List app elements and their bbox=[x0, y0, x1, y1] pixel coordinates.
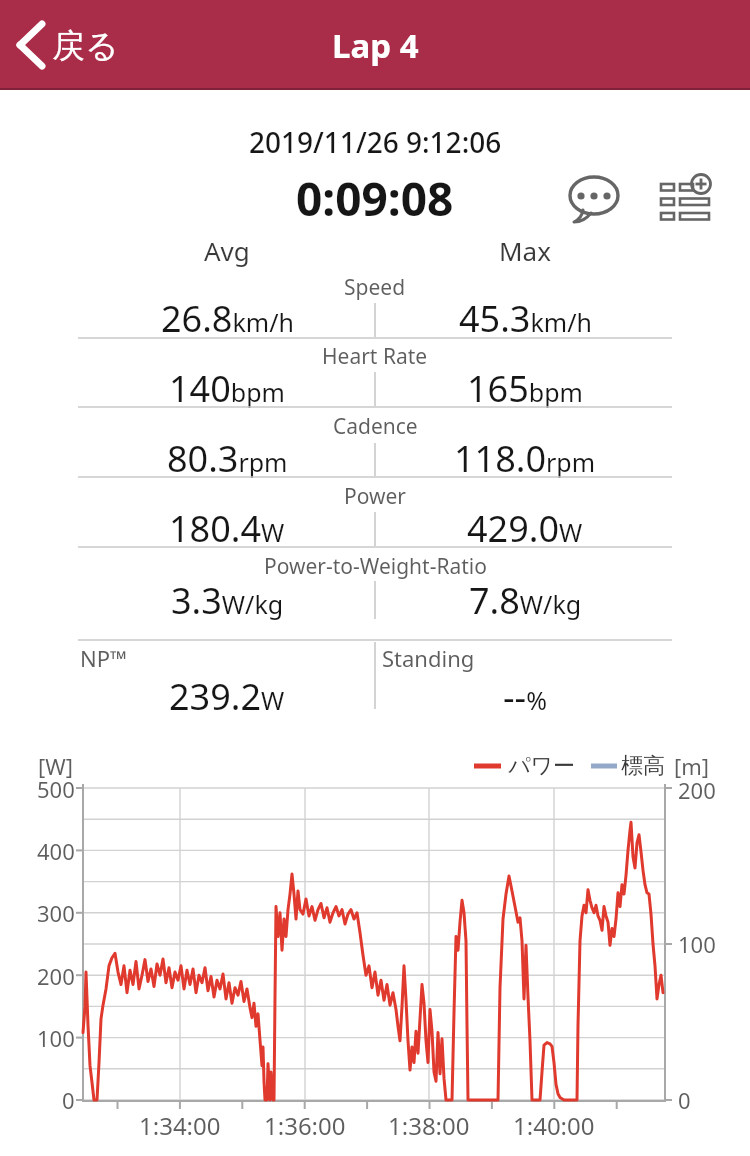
staticText: Power bbox=[344, 482, 407, 511]
staticText: 200 bbox=[37, 961, 75, 991]
staticText: Standing bbox=[382, 643, 475, 673]
button[interactable] bbox=[8, 8, 138, 82]
staticText: --% bbox=[503, 672, 547, 721]
staticText: 0 bbox=[678, 1085, 691, 1115]
staticText: 180.4W bbox=[169, 504, 285, 553]
staticText: 0 bbox=[62, 1085, 75, 1115]
staticText: Power-to-Weight-Ratio bbox=[264, 552, 487, 581]
staticText: 429.0W bbox=[467, 504, 583, 553]
staticText: Max bbox=[499, 233, 551, 268]
staticText: 45.3km/h bbox=[459, 294, 592, 343]
staticText: Cadence bbox=[333, 412, 418, 441]
staticText: 140bpm bbox=[169, 364, 285, 413]
staticText: 1:34:00 bbox=[139, 1109, 221, 1142]
staticText: Speed bbox=[344, 273, 406, 302]
staticText: 2019/11/26 9:12:06 bbox=[249, 123, 502, 161]
staticText: NP™ bbox=[80, 643, 128, 673]
staticText: 80.3rpm bbox=[167, 434, 288, 483]
staticText: 3.3W/kg bbox=[171, 576, 284, 625]
staticText: [m] bbox=[674, 751, 710, 781]
staticText: 100 bbox=[37, 1023, 75, 1053]
staticText: 標高 bbox=[621, 752, 665, 780]
staticText: 1:36:00 bbox=[264, 1109, 346, 1142]
staticText: パワー bbox=[508, 752, 576, 780]
staticText: 165bpm bbox=[467, 364, 583, 413]
staticText: 1:40:00 bbox=[513, 1109, 595, 1142]
staticText: 1:38:00 bbox=[388, 1109, 470, 1142]
staticText: 100 bbox=[678, 929, 716, 959]
staticText: 500 bbox=[37, 774, 75, 804]
staticText: Heart Rate bbox=[322, 342, 428, 371]
button[interactable] bbox=[560, 168, 626, 228]
staticText: 400 bbox=[37, 836, 75, 866]
staticText: 300 bbox=[37, 898, 75, 928]
staticText: 200 bbox=[678, 775, 716, 805]
staticText: 239.2W bbox=[169, 672, 285, 721]
staticText: 26.8km/h bbox=[161, 294, 294, 343]
staticText: Lap 4 bbox=[332, 23, 419, 68]
staticText: Avg bbox=[204, 233, 250, 268]
button[interactable] bbox=[652, 164, 722, 228]
staticText: 7.8W/kg bbox=[469, 576, 582, 625]
staticText: [W] bbox=[38, 751, 73, 781]
staticText: 戻る bbox=[52, 25, 119, 67]
staticText: 0:09:08 bbox=[296, 167, 454, 229]
staticText: 118.0rpm bbox=[454, 434, 596, 483]
